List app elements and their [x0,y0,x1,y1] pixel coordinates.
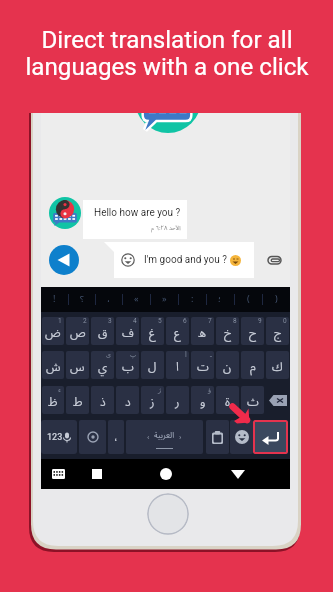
staticText: ش [46,355,61,379]
button[interactable]: م [241,351,264,379]
button[interactable]: : [178,287,206,312]
button[interactable]: س [66,351,89,379]
button[interactable]: ، [95,287,122,312]
button[interactable]: ص [66,317,89,345]
staticText: 0 [283,317,287,325]
button[interactable]: ه [191,317,214,345]
button[interactable]: ل [141,351,164,379]
button[interactable]: Backspace [265,386,290,414]
button[interactable]: Clipboard [206,420,229,454]
button[interactable]: ‹ [126,420,203,454]
staticText: ط [73,390,83,414]
button[interactable]: خ [216,317,239,345]
staticText: ؛ [218,290,222,309]
button[interactable]: ك [266,351,289,379]
staticText: 3 [108,317,112,325]
button[interactable]: I'm good and you ? [104,242,254,278]
staticText: س [70,355,85,379]
staticText: › [179,433,182,442]
button[interactable]: » [150,287,178,312]
staticText: ؤ [208,386,212,394]
button[interactable]: ح [241,317,264,345]
button[interactable]: ذ [91,386,114,414]
staticText: ! [53,290,56,309]
staticText: ن [223,355,232,379]
button[interactable]: Send message [49,245,79,275]
staticText: ث [247,390,259,414]
button[interactable]: غ [141,317,164,345]
button[interactable]: ع [166,317,189,345]
staticText: د [125,390,131,414]
staticText: و [200,390,206,414]
button[interactable]: ؛ [206,287,234,312]
button[interactable]: ب [116,351,139,379]
staticText: ت [197,355,209,379]
staticText: 1 [58,317,62,325]
button[interactable]: ف [116,317,139,345]
staticText: 4 [133,317,137,325]
button[interactable]: Hello how are you ? [83,200,187,239]
staticText: ة [225,390,230,414]
staticText: ل [148,355,157,379]
button[interactable]: ش [42,351,64,379]
button[interactable]: Input settings [79,420,106,454]
staticText: Direct translation for all languages wit… [25,26,309,80]
staticText: ژ [158,386,162,394]
staticText: 6 [183,317,187,325]
button[interactable]: ن [216,351,239,379]
staticText: م [250,355,256,379]
staticText: ي [98,355,108,379]
staticText: ) [275,290,278,309]
button[interactable]: Home [160,468,172,480]
button[interactable]: « [122,287,150,312]
button[interactable]: ي [91,351,114,379]
button[interactable]: ط [66,386,89,414]
button[interactable]: ض [42,317,64,345]
staticText: ف [122,321,134,345]
button[interactable]: 123 [41,420,77,454]
button[interactable]: ا [166,351,189,379]
staticText: پ [130,351,137,359]
staticText: ر [175,390,180,414]
button[interactable]: و [191,386,214,414]
staticText: 2 [83,317,87,325]
staticText: ظ [48,390,58,414]
button[interactable]: ث [241,386,264,414]
staticText: : [191,290,194,309]
button[interactable]: ، [108,420,124,454]
button[interactable]: ظ [42,386,64,414]
staticText: 123 [47,432,63,443]
staticText: ( [247,290,250,309]
button[interactable]: Enter [253,420,288,454]
staticText: ز [150,390,155,414]
staticText: ؟ [80,290,84,309]
staticText: أ [185,351,187,359]
staticText: 5 [158,317,162,325]
staticText: الأحد ٦:٢٨ م [151,222,181,235]
staticText: ص [70,321,86,345]
button[interactable]: ؟ [68,287,95,312]
staticText: ، [114,426,118,449]
button[interactable]: ق [91,317,114,345]
button[interactable]: Hide keyboard [52,469,65,479]
button[interactable]: ت [191,351,214,379]
button[interactable]: ( [234,287,262,312]
button[interactable]: د [116,386,139,414]
button[interactable]: ) [262,287,290,312]
button[interactable]: Home button [147,493,189,535]
button[interactable]: ! [41,287,68,312]
button[interactable]: ج [266,317,289,345]
button[interactable]: ر [166,386,189,414]
staticText: ى [106,351,112,359]
button[interactable]: ة [216,386,239,414]
button[interactable]: Attach file [267,253,284,270]
staticText: العربية [154,427,175,444]
staticText: ، [107,290,110,309]
button[interactable]: ز [141,386,164,414]
staticText: 9 [258,317,262,325]
button[interactable]: Emoji [230,420,253,454]
staticText: ج [274,321,282,345]
staticText: ب [122,355,134,379]
button[interactable]: Back [231,470,245,479]
